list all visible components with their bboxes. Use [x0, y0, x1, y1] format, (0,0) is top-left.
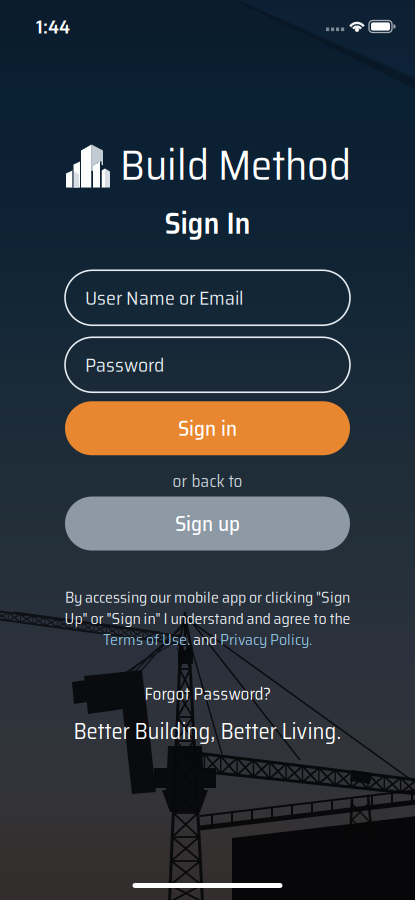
staticText: and [190, 627, 220, 652]
staticText: Better Building, Better Living. [73, 713, 341, 749]
staticText: Up" or "Sign in" I understand and agree … [64, 606, 350, 631]
staticText: Sign in [178, 411, 237, 445]
staticText: Sign up [175, 507, 240, 540]
button[interactable]: Terms of Use. [103, 627, 190, 652]
staticText: Terms of Use. [103, 627, 190, 652]
staticText: 1:44 [36, 11, 70, 42]
staticText: Sign In [164, 199, 250, 247]
staticText: or back to [172, 467, 242, 495]
staticText: Password [85, 349, 164, 380]
staticText: User Name or Email [85, 282, 243, 313]
button[interactable]: Forgot Password? [144, 680, 270, 707]
button[interactable]: Password [65, 337, 350, 392]
staticText: Build Method [120, 131, 351, 199]
staticText: By accessing our mobile app or clicking … [65, 585, 350, 610]
button[interactable]: Privacy Policy. [220, 627, 312, 652]
button[interactable]: Sign in [65, 401, 350, 455]
button[interactable]: User Name or Email [65, 270, 350, 325]
button[interactable]: Sign up [65, 497, 350, 551]
staticText: Forgot Password? [144, 680, 270, 707]
staticText: Privacy Policy. [220, 627, 312, 652]
